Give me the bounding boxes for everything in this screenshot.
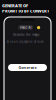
staticText: Image AI bbox=[20, 26, 32, 29]
staticText: A neon city skyline at dusk bbox=[7, 40, 43, 43]
staticText: Generate bbox=[18, 65, 36, 70]
staticText: PROMT TO BF CONVERT bbox=[2, 8, 49, 14]
staticText: Describe the image bbox=[13, 33, 40, 36]
button[interactable]: Generate bbox=[8, 64, 47, 71]
staticText: GENERATE OF bbox=[2, 3, 28, 8]
